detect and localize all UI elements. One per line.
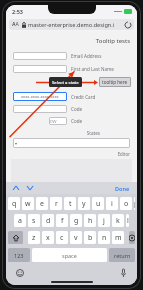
button[interactable]: d bbox=[42, 214, 54, 227]
staticText: z bbox=[32, 233, 36, 243]
staticText: d bbox=[46, 216, 51, 226]
staticText: Email Address bbox=[71, 53, 102, 59]
staticText: Done bbox=[115, 185, 130, 192]
staticText: g bbox=[74, 216, 79, 226]
button[interactable]: k bbox=[112, 214, 124, 227]
button[interactable]: v bbox=[70, 231, 82, 244]
staticText: tooltip here bbox=[102, 79, 128, 85]
button[interactable]: Next field bbox=[25, 183, 35, 193]
staticText: v bbox=[74, 233, 78, 243]
button[interactable]: o bbox=[120, 197, 132, 210]
button[interactable]: Previous field bbox=[11, 183, 21, 193]
staticText: a bbox=[18, 216, 22, 226]
button[interactable]: g bbox=[70, 214, 82, 227]
staticText: k bbox=[116, 216, 120, 226]
button[interactable] bbox=[13, 65, 67, 73]
button[interactable] bbox=[13, 52, 67, 60]
staticText: m bbox=[115, 233, 122, 243]
button[interactable]: tooltip here bbox=[99, 77, 131, 87]
staticText: j bbox=[103, 216, 105, 226]
button[interactable]: n bbox=[98, 231, 110, 244]
button[interactable]: m bbox=[112, 231, 124, 244]
staticText: 𝐀A bbox=[12, 21, 19, 28]
button[interactable] bbox=[13, 105, 67, 113]
staticText: CVV bbox=[49, 119, 57, 124]
staticText: i bbox=[111, 199, 113, 209]
button[interactable]: space bbox=[32, 248, 107, 262]
staticText: u bbox=[96, 199, 101, 209]
button[interactable]: p bbox=[134, 197, 135, 210]
button[interactable]: Shift bbox=[8, 231, 23, 244]
staticText: master-enterprise.demo.design.i bbox=[28, 21, 123, 29]
button[interactable]: return bbox=[109, 248, 135, 262]
button[interactable]: h bbox=[84, 214, 96, 227]
button[interactable]: l bbox=[126, 214, 129, 227]
button[interactable]: xxxx-xxxx-xxxx-xxxx bbox=[13, 92, 67, 101]
staticText: 2:53 bbox=[12, 8, 23, 15]
staticText: Tooltip tests bbox=[6, 37, 130, 45]
staticText: Code bbox=[71, 118, 83, 124]
button[interactable]: u bbox=[92, 197, 104, 210]
button[interactable]: i bbox=[106, 197, 118, 210]
staticText: Editor bbox=[6, 151, 130, 157]
button[interactable]: a bbox=[14, 214, 26, 227]
staticText: s bbox=[32, 216, 36, 226]
staticText: e bbox=[40, 199, 44, 209]
staticText: t bbox=[69, 199, 72, 209]
staticText: ▾ bbox=[13, 141, 18, 146]
button[interactable]: 123 bbox=[8, 248, 30, 262]
button[interactable]: j bbox=[98, 214, 110, 227]
button[interactable]: q bbox=[8, 197, 20, 210]
button[interactable]: z bbox=[28, 231, 40, 244]
button[interactable]: Reload bbox=[123, 20, 132, 29]
button[interactable]: c bbox=[56, 231, 68, 244]
staticText: 123 bbox=[14, 252, 24, 259]
button[interactable]: Emoji bbox=[14, 267, 25, 278]
button[interactable]: Dictation bbox=[118, 267, 129, 278]
staticText: x bbox=[46, 233, 50, 243]
button[interactable]: Delete bbox=[129, 231, 135, 244]
staticText: f bbox=[61, 216, 64, 226]
button[interactable]: y bbox=[78, 197, 90, 210]
staticText: n bbox=[102, 233, 107, 243]
staticText: q bbox=[12, 199, 17, 209]
staticText: p bbox=[134, 199, 135, 209]
button[interactable]: e bbox=[36, 197, 48, 210]
button[interactable]: ▾ bbox=[13, 138, 130, 148]
staticText: w bbox=[25, 199, 31, 209]
staticText: b bbox=[88, 233, 93, 243]
staticText: Select a state bbox=[52, 79, 79, 85]
staticText: xxxx-xxxx-xxxx-xxxx bbox=[21, 94, 59, 99]
staticText: h bbox=[88, 216, 93, 226]
button[interactable]: CVV bbox=[49, 117, 67, 125]
staticText: Credit Card bbox=[71, 94, 96, 100]
button[interactable]: w bbox=[22, 197, 34, 210]
button[interactable]: s bbox=[28, 214, 40, 227]
staticText: r bbox=[55, 199, 58, 209]
button[interactable]: f bbox=[56, 214, 68, 227]
button[interactable]: r bbox=[50, 197, 62, 210]
staticText: return bbox=[114, 252, 131, 259]
staticText: First and Last Name bbox=[71, 66, 114, 72]
staticText: y bbox=[82, 199, 86, 209]
staticText: o bbox=[124, 199, 129, 209]
button[interactable]: 𝐀A bbox=[9, 19, 134, 30]
staticText: States bbox=[6, 130, 100, 136]
staticText: space bbox=[62, 252, 77, 259]
staticText: l bbox=[127, 216, 129, 226]
button[interactable]: Done bbox=[113, 185, 132, 192]
button[interactable]: x bbox=[42, 231, 54, 244]
button[interactable]: b bbox=[84, 231, 96, 244]
staticText: c bbox=[60, 233, 64, 243]
staticText: Code bbox=[71, 106, 83, 112]
button[interactable]: t bbox=[64, 197, 76, 210]
